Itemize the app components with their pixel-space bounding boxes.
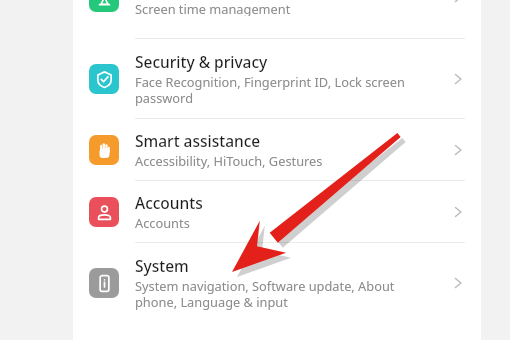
staticText: Face Recognition, Fingerprint ID, Lock s… bbox=[135, 73, 405, 107]
staticText: Accounts bbox=[135, 214, 190, 231]
button[interactable]: Accounts bbox=[73, 181, 481, 242]
staticText: Smart assistance bbox=[135, 130, 261, 151]
staticText: Screen time management bbox=[135, 0, 291, 16]
staticText: System bbox=[135, 255, 189, 276]
button[interactable]: Smart assistance bbox=[73, 119, 481, 180]
button[interactable]: System bbox=[73, 243, 481, 322]
staticText: System navigation, Software update, Abou… bbox=[135, 277, 395, 311]
button[interactable]: Digital balance bbox=[73, 0, 481, 16]
staticText: Security & privacy bbox=[135, 51, 268, 72]
staticText: Accounts bbox=[135, 192, 203, 213]
button[interactable]: Security and privacy bbox=[73, 39, 481, 118]
staticText: Accessibility, HiTouch, Gestures bbox=[135, 152, 323, 169]
